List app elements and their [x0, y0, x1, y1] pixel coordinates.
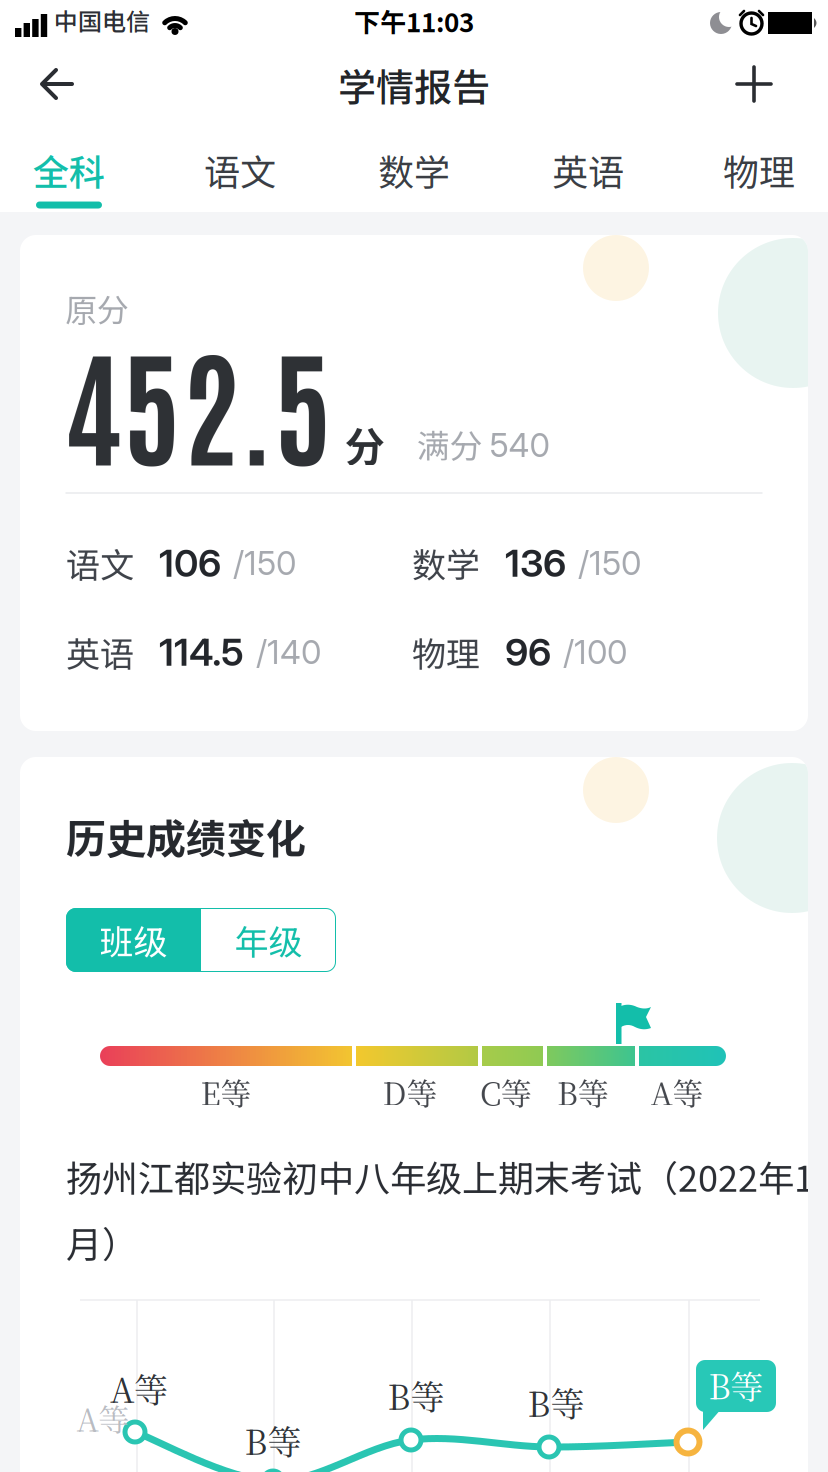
staticText: A等	[110, 1364, 168, 1412]
staticText: B等	[527, 1378, 584, 1426]
staticText: 452.5	[63, 319, 332, 483]
staticText: 数学	[412, 538, 480, 588]
staticText: 英语	[552, 144, 624, 196]
staticText: 分	[345, 415, 385, 473]
staticText: B等	[708, 1361, 763, 1409]
staticText: 数学	[378, 144, 450, 196]
staticText: 106	[159, 540, 221, 586]
button[interactable]: 数学	[354, 140, 474, 200]
staticText: 114.5	[159, 629, 244, 675]
staticText: 班级	[99, 915, 167, 965]
button[interactable]	[737, 67, 771, 101]
staticText: 全科	[33, 144, 105, 196]
staticText: /140	[256, 632, 321, 672]
staticText: C等	[480, 1070, 532, 1114]
staticText: /100	[563, 632, 627, 672]
staticText: 年级	[234, 915, 302, 965]
staticText: A等	[76, 1396, 129, 1440]
button[interactable]: 全科	[9, 140, 129, 200]
staticText: /150	[233, 543, 296, 583]
staticText: 语文	[66, 538, 134, 588]
staticText: 满分 540	[416, 421, 549, 467]
staticText: 原分	[65, 285, 129, 331]
staticText: 136	[505, 540, 566, 586]
staticText: 下午11:03	[354, 2, 474, 40]
staticText: 物理	[412, 627, 480, 677]
button[interactable]: 语文	[180, 140, 300, 200]
button[interactable]: 英语	[528, 140, 648, 200]
button[interactable]	[40, 68, 74, 100]
button[interactable]: 班级	[66, 908, 201, 972]
staticText: B等	[387, 1371, 444, 1419]
staticText: D等	[382, 1070, 437, 1114]
staticText: /150	[578, 543, 641, 583]
staticText: 语文	[204, 144, 276, 196]
staticText: 96	[505, 629, 551, 675]
staticText: B等	[244, 1416, 301, 1464]
button[interactable]: 物理	[699, 140, 819, 200]
staticText: 历史成绩变化	[66, 807, 306, 865]
staticText: A等	[650, 1070, 703, 1114]
staticText: 英语	[66, 627, 134, 677]
staticText: 中国电信	[54, 3, 150, 37]
staticText: E等	[200, 1070, 251, 1114]
staticText: B等	[557, 1070, 609, 1114]
staticText: 学情报告	[338, 57, 490, 112]
staticText: 物理	[723, 144, 795, 196]
staticText: 扬州江都实验初中八年级上期末考试（2022年1月）	[66, 1150, 814, 1268]
button[interactable]: 年级	[201, 908, 336, 972]
